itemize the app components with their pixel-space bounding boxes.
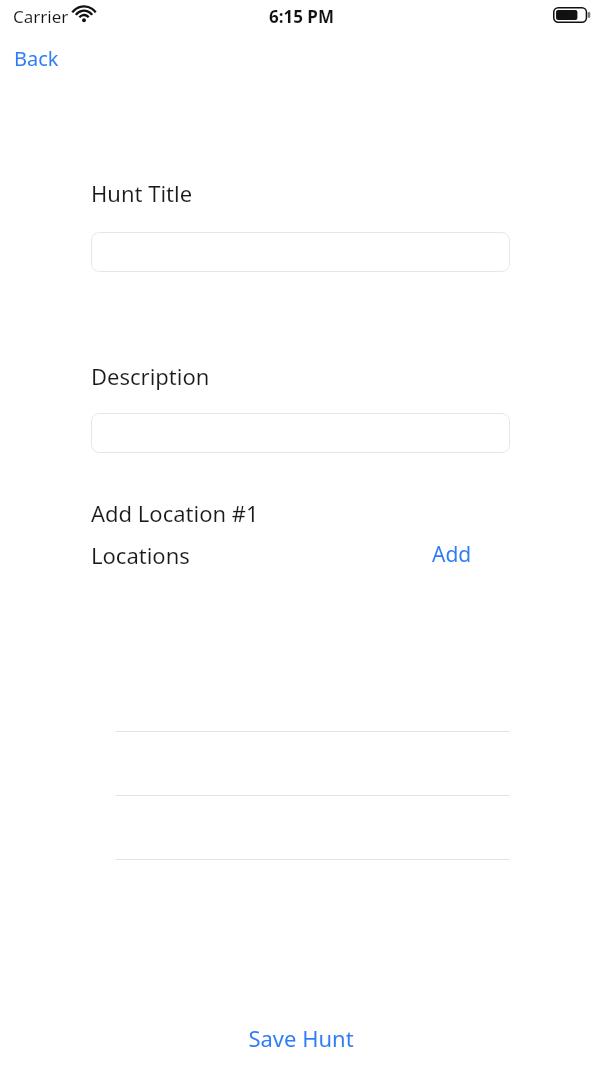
- staticText: Save Hunt: [248, 1023, 354, 1053]
- button[interactable]: Save Hunt: [238, 1018, 364, 1058]
- other: Wi-Fi signal: [73, 6, 95, 23]
- staticText: Add Location #1: [91, 498, 259, 528]
- button[interactable]: Text input field: [91, 232, 510, 272]
- button[interactable]: Back: [8, 42, 65, 75]
- staticText: Carrier: [13, 5, 69, 28]
- staticText: Back: [14, 45, 59, 72]
- staticText: Add: [432, 540, 472, 569]
- staticText: Hunt Title: [91, 178, 193, 208]
- other: Battery level: [553, 7, 591, 23]
- staticText: Locations: [91, 540, 190, 570]
- button[interactable]: Add: [426, 536, 478, 573]
- button[interactable]: Text input field: [91, 413, 510, 453]
- staticText: 6:15 PM: [269, 5, 334, 28]
- staticText: Description: [91, 361, 210, 391]
